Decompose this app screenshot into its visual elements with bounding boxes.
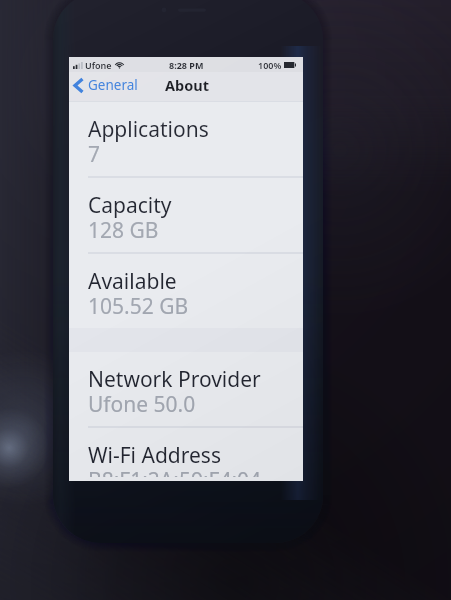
button[interactable]: Applications [69, 102, 303, 176]
staticText: 105.52 GB [88, 292, 189, 321]
staticText: 100% [258, 59, 282, 71]
staticText: Network Provider [88, 365, 261, 394]
staticText: General [88, 76, 138, 94]
staticText: Available [88, 267, 177, 296]
staticText: Applications [88, 115, 209, 144]
staticText: 7 [88, 140, 101, 169]
staticText: 8:28 PM [169, 59, 204, 71]
staticText: Capacity [88, 191, 172, 220]
button[interactable]: Available [69, 254, 303, 328]
staticText: Ufone 50.0 [88, 390, 196, 419]
staticText: Ufone [85, 59, 112, 71]
button[interactable]: Capacity [69, 178, 303, 252]
button[interactable]: Wi-Fi Address [69, 428, 303, 481]
staticText: About [165, 75, 209, 95]
staticText: 128 GB [88, 216, 159, 245]
button[interactable]: Network Provider [69, 352, 303, 426]
staticText: B8:F1:2A:59:F4:04 [88, 466, 262, 477]
button[interactable]: General [71, 73, 140, 97]
staticText: Wi-Fi Address [88, 441, 221, 470]
